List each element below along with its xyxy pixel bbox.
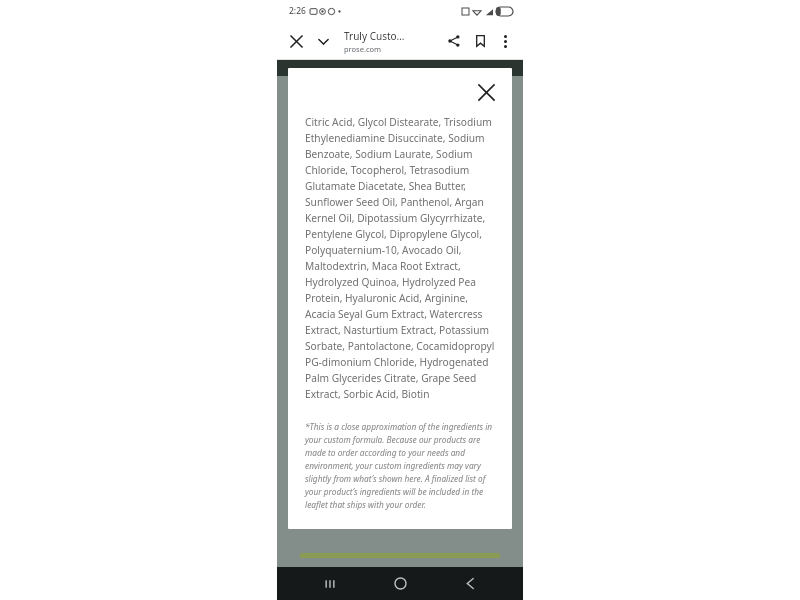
button[interactable]: Back	[453, 567, 487, 600]
button[interactable]: Expand	[310, 28, 336, 54]
button[interactable]: Close dialog	[473, 79, 499, 105]
button[interactable]: Bookmark	[467, 28, 493, 54]
button[interactable]: Truly Custo…	[344, 29, 441, 54]
button[interactable]: Home	[383, 567, 417, 600]
staticText: 2:26	[289, 5, 306, 17]
staticText: *This is a close approximation of the in…	[305, 421, 498, 511]
button[interactable]: Close	[283, 28, 309, 54]
staticText: Truly Custo…	[344, 29, 405, 43]
staticText: prose.com	[344, 44, 382, 54]
button[interactable]: Share	[441, 28, 467, 54]
button[interactable]: Recents	[313, 567, 347, 600]
staticText: Citric Acid, Glycol Distearate, Trisodiu…	[305, 115, 498, 401]
button[interactable]: More options	[493, 29, 517, 53]
